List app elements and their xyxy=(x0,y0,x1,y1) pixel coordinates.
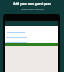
staticText: Add your own guest pass xyxy=(13,2,51,6)
staticText: Share your location xyxy=(21,7,44,10)
